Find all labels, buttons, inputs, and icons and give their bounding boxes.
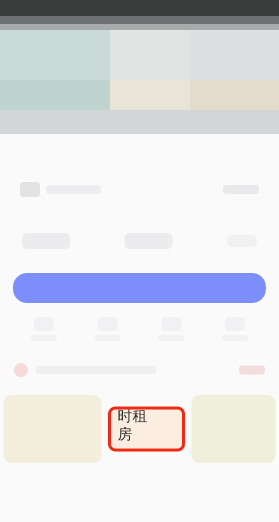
staticText: 时租房 (117, 407, 147, 443)
